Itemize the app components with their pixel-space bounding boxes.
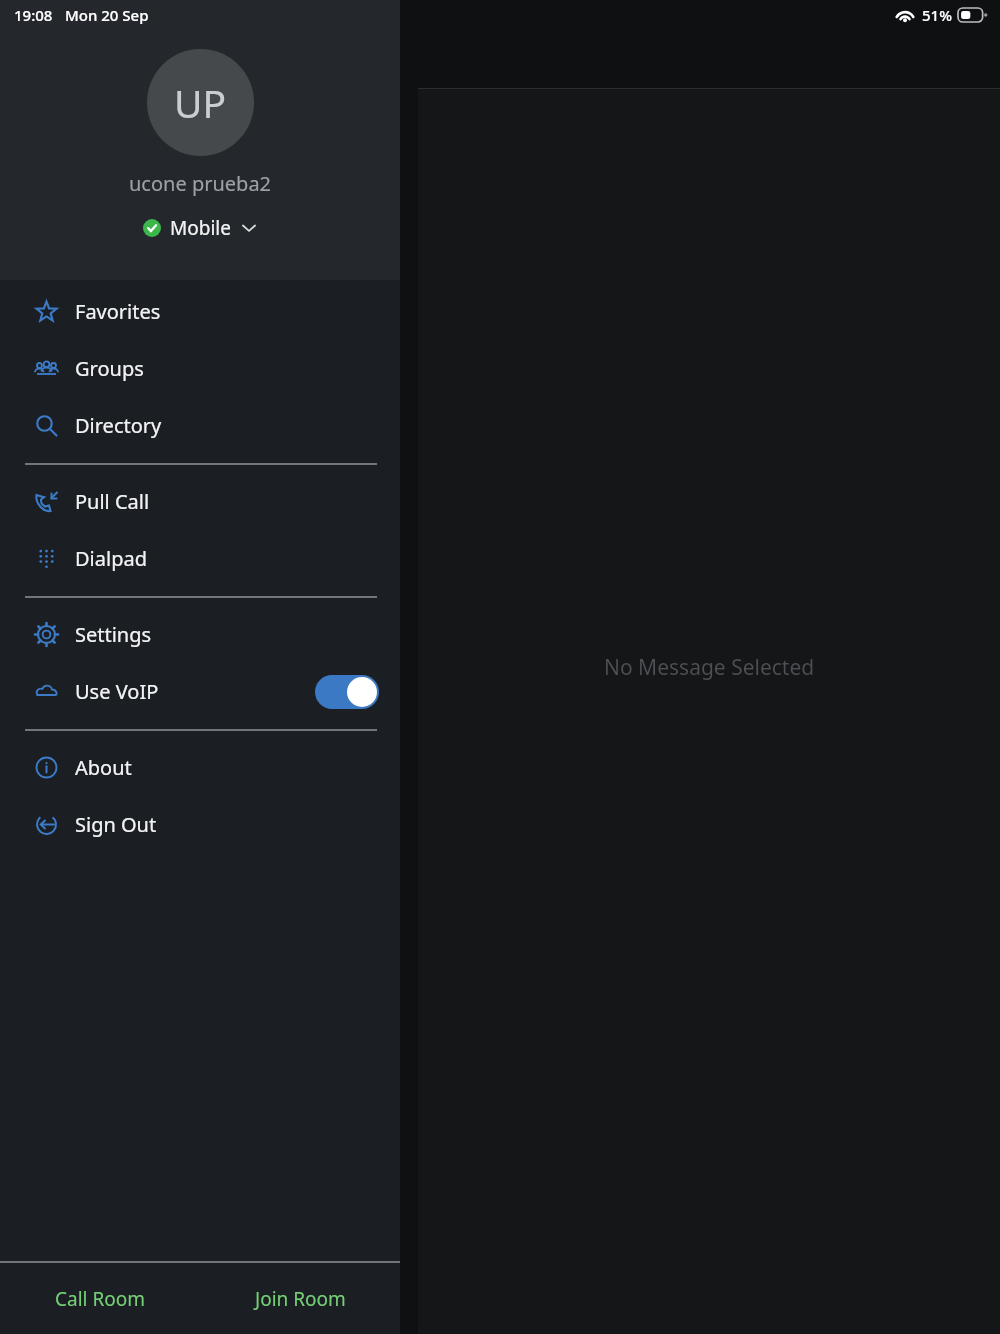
button[interactable]: Join Room (200, 1263, 400, 1334)
staticText: About (75, 754, 132, 781)
staticText: 51% (922, 5, 952, 25)
button[interactable]: Settings (0, 606, 400, 663)
staticText: Groups (75, 355, 144, 382)
button[interactable]: Directory (0, 397, 400, 454)
staticText: Use VoIP (75, 678, 159, 705)
button[interactable]: Groups (0, 340, 400, 397)
staticText: Directory (75, 412, 162, 439)
staticText: UP (174, 76, 227, 129)
staticText: No Message Selected (604, 653, 815, 682)
staticText: Mon 20 Sep (65, 5, 149, 25)
staticText: Call Room (55, 1286, 145, 1312)
staticText: Pull Call (75, 488, 150, 515)
staticText: 19:08 (14, 5, 53, 25)
staticText: Mobile (170, 215, 231, 241)
button[interactable]: Profile avatar (147, 49, 254, 156)
button[interactable]: Use VoIP toggle (315, 675, 379, 709)
button[interactable]: Dialpad (0, 530, 400, 587)
button[interactable]: Mobile (137, 212, 263, 244)
button[interactable]: Pull Call (0, 473, 400, 530)
staticText: Sign Out (75, 811, 157, 838)
staticText: Join Room (255, 1286, 346, 1312)
staticText: Settings (75, 621, 152, 648)
button[interactable]: Use VoIP (0, 663, 400, 720)
button[interactable]: About (0, 739, 400, 796)
staticText: Dialpad (75, 545, 147, 572)
button[interactable]: Favorites (0, 283, 400, 340)
button[interactable]: Call Room (0, 1263, 200, 1334)
button[interactable]: Sign Out (0, 796, 400, 853)
staticText: ucone prueba2 (129, 170, 272, 197)
staticText: Favorites (75, 298, 161, 325)
